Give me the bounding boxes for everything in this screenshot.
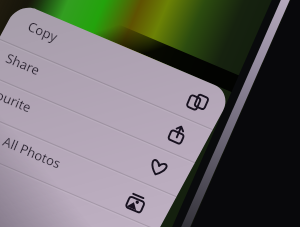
button[interactable] [0,0,300,227]
